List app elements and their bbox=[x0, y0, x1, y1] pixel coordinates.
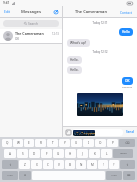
button[interactable]: Add photo bbox=[65, 129, 71, 135]
button[interactable]: ☸ bbox=[19, 171, 31, 180]
staticText: OK bbox=[15, 37, 20, 41]
button[interactable]: Hello. bbox=[67, 66, 82, 74]
button[interactable]: C bbox=[43, 160, 53, 169]
button[interactable]: Compose new message bbox=[52, 8, 59, 15]
button[interactable]: What's up? bbox=[67, 39, 90, 47]
button[interactable] bbox=[76, 92, 124, 117]
button[interactable]: E bbox=[24, 139, 34, 147]
button[interactable]: I bbox=[83, 139, 94, 147]
staticText: 12:13 bbox=[52, 32, 59, 36]
button[interactable]: X bbox=[31, 160, 42, 169]
staticText: Messages bbox=[21, 9, 42, 15]
staticText: F bbox=[46, 152, 48, 156]
button[interactable]: .?123 bbox=[2, 171, 18, 180]
staticText: OK bbox=[125, 79, 130, 83]
button[interactable]: V bbox=[54, 160, 64, 169]
staticText: Send bbox=[126, 130, 134, 134]
button[interactable]: OK bbox=[122, 77, 133, 85]
button[interactable]: U bbox=[71, 139, 82, 147]
button[interactable]: N bbox=[76, 160, 86, 169]
button[interactable]: ? bbox=[109, 160, 119, 169]
staticText: Delivered bbox=[122, 86, 133, 89]
button[interactable]: ⇧ bbox=[2, 160, 18, 169]
button[interactable]: ⌨ bbox=[123, 171, 135, 180]
button[interactable]: Search bbox=[3, 20, 59, 27]
staticText: ! bbox=[103, 163, 104, 167]
staticText: U bbox=[75, 141, 78, 145]
button[interactable]: Q bbox=[2, 139, 12, 147]
staticText: The Cameraman bbox=[15, 31, 52, 36]
staticText: What's up? bbox=[70, 41, 87, 45]
staticText: I bbox=[88, 141, 90, 145]
button[interactable]: K bbox=[89, 149, 100, 158]
staticText: .?123 bbox=[7, 174, 13, 177]
staticText: Q bbox=[6, 141, 9, 145]
staticText: Today 12:12 bbox=[67, 50, 133, 54]
button[interactable]: D bbox=[29, 149, 40, 158]
staticText: ☸ bbox=[24, 174, 27, 177]
staticText: X bbox=[36, 163, 38, 167]
staticText: J bbox=[82, 152, 83, 156]
staticText: S bbox=[22, 152, 24, 156]
staticText: W bbox=[17, 141, 20, 145]
staticText: A bbox=[9, 152, 11, 156]
staticText: .?123 bbox=[111, 174, 117, 177]
button[interactable]: A bbox=[4, 149, 16, 158]
staticText: H bbox=[69, 152, 72, 156]
staticText: C bbox=[47, 163, 49, 167]
button[interactable]: W bbox=[13, 139, 23, 147]
staticText: The Cameraman bbox=[75, 9, 108, 14]
button[interactable]: O bbox=[95, 139, 106, 147]
staticText: 9:41 bbox=[3, 1, 10, 5]
button[interactable]: B bbox=[65, 160, 75, 169]
staticText: O bbox=[99, 141, 102, 145]
staticText: Hello. bbox=[70, 58, 79, 62]
staticText: P bbox=[112, 141, 114, 145]
button[interactable]: Y bbox=[59, 139, 70, 147]
button[interactable]: Contact bbox=[118, 9, 134, 15]
staticText: Contact bbox=[120, 10, 132, 14]
button[interactable]: ⇧ bbox=[120, 160, 135, 169]
button[interactable]: G bbox=[53, 149, 64, 158]
button[interactable]: L bbox=[101, 149, 112, 158]
staticText: Search bbox=[28, 22, 39, 26]
button[interactable]: F bbox=[41, 149, 52, 158]
button[interactable]: J bbox=[77, 149, 88, 158]
button[interactable]: ⌫ bbox=[119, 139, 135, 147]
staticText: D bbox=[33, 152, 36, 156]
button[interactable]: Z bbox=[19, 160, 30, 169]
staticText: ⌨ bbox=[127, 174, 131, 177]
staticText: V bbox=[58, 163, 60, 167]
button[interactable]: .?123 bbox=[106, 171, 122, 180]
button[interactable]: M bbox=[87, 160, 97, 169]
staticText: G bbox=[57, 152, 60, 156]
staticText: Today 12:11 bbox=[67, 21, 133, 25]
button[interactable]: ! bbox=[98, 160, 108, 169]
button[interactable]: H bbox=[65, 149, 76, 158]
staticText: R bbox=[40, 141, 42, 145]
staticText: return bbox=[120, 152, 127, 155]
button[interactable]: Hello bbox=[119, 28, 133, 36]
staticText: Y bbox=[64, 141, 66, 145]
staticText: Hello. bbox=[70, 68, 79, 72]
staticText: ? bbox=[113, 163, 115, 167]
button[interactable]: S bbox=[17, 149, 28, 158]
staticText: B bbox=[69, 163, 72, 167]
staticText: L bbox=[106, 152, 108, 156]
button[interactable]: R bbox=[35, 139, 46, 147]
button[interactable]: The Cameraman bbox=[0, 29, 62, 43]
button[interactable]: P bbox=[107, 139, 118, 147]
button[interactable]: Hello. bbox=[67, 56, 82, 64]
staticText: M bbox=[91, 163, 94, 167]
button[interactable]: Send bbox=[125, 129, 135, 135]
button[interactable]: Edit bbox=[3, 8, 12, 15]
button[interactable]: return bbox=[113, 149, 133, 158]
button[interactable] bbox=[72, 129, 123, 136]
button[interactable]: T bbox=[47, 139, 58, 147]
staticText: T bbox=[52, 141, 54, 145]
staticText: Edit bbox=[4, 9, 11, 14]
staticText: K bbox=[94, 152, 96, 156]
staticText: ⇧ bbox=[126, 163, 129, 167]
staticText: E bbox=[28, 141, 30, 145]
